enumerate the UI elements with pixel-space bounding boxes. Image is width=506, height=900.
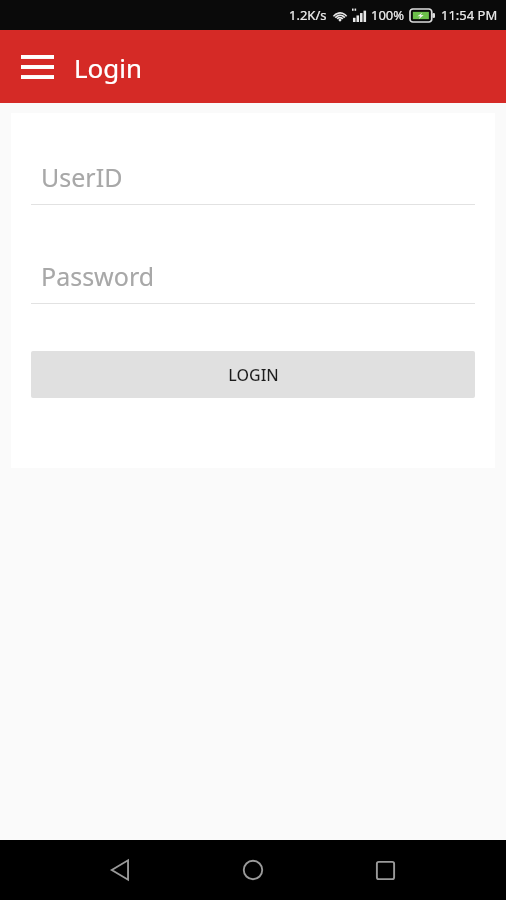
button[interactable]: UserID xyxy=(31,160,475,205)
staticText: Password xyxy=(41,259,155,293)
button[interactable]: Home xyxy=(224,840,282,900)
staticText: UserID xyxy=(41,160,123,194)
staticText: 11:54 PM xyxy=(441,6,498,24)
staticText: LOGIN xyxy=(228,364,279,386)
button[interactable]: LOGIN xyxy=(31,351,475,398)
staticText: Login xyxy=(74,50,143,85)
button[interactable]: Open navigation menu xyxy=(10,40,64,94)
button[interactable]: Password xyxy=(31,259,475,304)
staticText: 100% xyxy=(371,6,405,24)
button[interactable]: Recent apps xyxy=(356,840,414,900)
button[interactable]: Back xyxy=(92,840,150,900)
staticText: 1.2K/s xyxy=(289,6,327,24)
